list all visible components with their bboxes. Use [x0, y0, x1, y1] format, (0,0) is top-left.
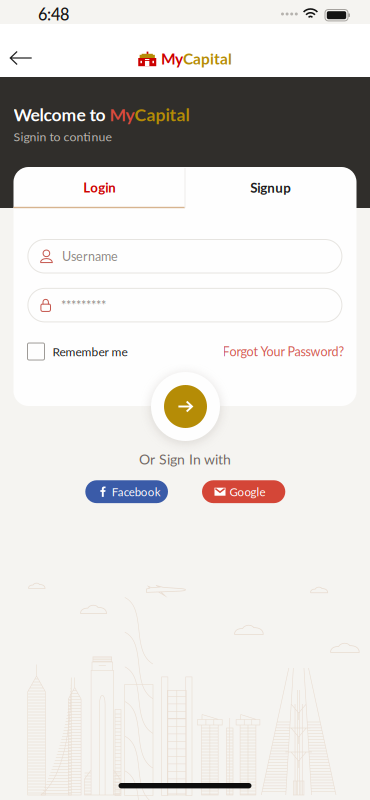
staticText: Remember me — [52, 344, 127, 359]
button[interactable]: Google — [202, 480, 285, 503]
staticText: Or Sign In with — [139, 451, 231, 467]
button[interactable]: Facebook — [85, 480, 168, 503]
staticText: 6:48 — [38, 4, 69, 24]
button[interactable]: Remember me — [27, 342, 127, 360]
staticText: Capital — [183, 49, 232, 68]
button[interactable]: Login — [13, 167, 185, 208]
button[interactable]: Forgot Your Password? — [222, 342, 344, 360]
button[interactable]: Sign in — [151, 372, 220, 441]
staticText: Login — [83, 180, 115, 195]
button[interactable]: Back — [0, 41, 42, 75]
staticText: ********* — [61, 298, 106, 313]
staticText: Forgot Your Password? — [222, 344, 344, 359]
staticText: Capital — [134, 104, 189, 125]
staticText: My — [109, 104, 134, 125]
staticText: My — [161, 49, 183, 68]
staticText: Welcome to — [13, 104, 109, 125]
staticText: Signin to continue — [13, 129, 111, 144]
staticText: Username — [62, 249, 118, 264]
staticText: Signup — [250, 179, 291, 195]
staticText: Google — [229, 485, 265, 499]
staticText: Facebook — [112, 485, 161, 499]
button[interactable]: Signup — [185, 167, 356, 208]
